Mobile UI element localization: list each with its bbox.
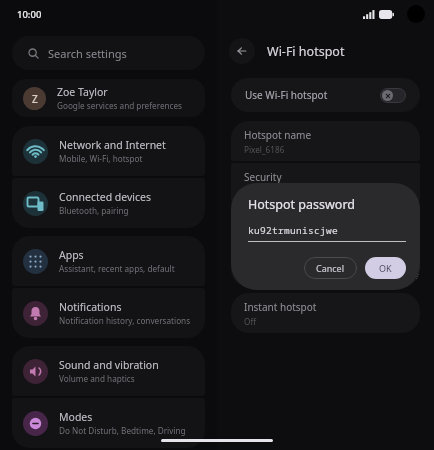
staticText: Assistant, recent apps, default apps bbox=[59, 263, 195, 274]
button[interactable]: Network and Internet bbox=[12, 126, 205, 176]
staticText: Speed and compatibility bbox=[244, 254, 357, 268]
staticText: Notification history, conversations bbox=[59, 315, 191, 326]
button[interactable]: Instant hotspot bbox=[231, 293, 420, 333]
button[interactable]: Hotspot name bbox=[231, 121, 420, 161]
staticText: 2.4 and 5 GHz / Compatible with most dev… bbox=[244, 270, 420, 281]
staticText: Mobile, Wi-Fi, hotspot bbox=[59, 153, 143, 164]
staticText: Zoe Taylor bbox=[57, 85, 108, 99]
button[interactable]: Use Wi-Fi hotspot bbox=[231, 78, 420, 112]
staticText: Connected devices bbox=[59, 190, 152, 204]
staticText: Hotspot name bbox=[244, 128, 312, 142]
button[interactable]: Search settings bbox=[12, 36, 205, 70]
button[interactable]: Sound and vibration bbox=[12, 346, 205, 396]
staticText: Bluetooth, pairing bbox=[59, 205, 129, 216]
staticText: Off bbox=[244, 316, 257, 327]
staticText: •••••••• bbox=[244, 228, 269, 239]
staticText: Network and Internet bbox=[59, 138, 166, 152]
button[interactable]: Cancel bbox=[304, 257, 357, 279]
staticText: Security bbox=[244, 170, 282, 184]
staticText: Google services and preferences bbox=[57, 100, 183, 111]
button[interactable]: Notifications bbox=[12, 288, 205, 338]
staticText: ku92trmuniscjwe bbox=[248, 224, 339, 237]
staticText: Z bbox=[32, 92, 38, 106]
staticText: Volume and haptics bbox=[59, 373, 135, 384]
button[interactable]: OK bbox=[365, 257, 406, 279]
staticText: Notifications bbox=[59, 300, 122, 314]
staticText: Apps bbox=[59, 248, 84, 262]
staticText: 10:00 bbox=[17, 8, 42, 21]
staticText: Search settings bbox=[48, 46, 127, 61]
staticText: Instant hotspot bbox=[244, 300, 317, 314]
staticText: OK bbox=[379, 262, 392, 274]
button[interactable]: Apps bbox=[12, 236, 205, 286]
staticText: Wi-Fi hotspot bbox=[267, 43, 345, 60]
staticText: Sound and vibration bbox=[59, 358, 159, 372]
button[interactable]: Connected devices bbox=[12, 178, 205, 228]
staticText: Use Wi-Fi hotspot bbox=[245, 88, 328, 102]
staticText: Modes bbox=[59, 410, 93, 424]
staticText: Hotspot password bbox=[248, 196, 356, 213]
button[interactable]: Security bbox=[231, 163, 420, 203]
staticText: Cancel bbox=[316, 262, 345, 274]
button[interactable]: Hotspot password bbox=[231, 205, 420, 245]
button[interactable]: Use Wi-Fi hotspot toggle bbox=[380, 88, 406, 103]
button[interactable]: Modes bbox=[12, 398, 205, 448]
staticText: Do Not Disturb, Bedtime, Driving bbox=[59, 425, 186, 436]
staticText: Pixel_6186 bbox=[244, 144, 285, 155]
button[interactable]: Z bbox=[12, 79, 205, 117]
button[interactable]: Speed and compatibility bbox=[231, 247, 420, 287]
button[interactable]: Back bbox=[229, 38, 255, 64]
